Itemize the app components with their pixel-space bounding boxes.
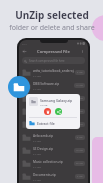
staticText: 18 MB	[76, 149, 83, 152]
staticText: Samsung Galaxy.zip	[33, 95, 64, 99]
staticText: 3 MB	[77, 175, 83, 178]
staticText: Aribcamb.zip	[33, 134, 53, 138]
button[interactable]: More options	[80, 49, 85, 54]
staticText: 2.4 MB	[33, 87, 41, 90]
staticText: Samsung Galaxy.zip	[40, 98, 73, 103]
staticText: 2.4 MB	[33, 100, 41, 103]
button[interactable]: Project files.zip	[22, 105, 85, 118]
staticText: 2.4 MB	[33, 74, 41, 77]
button[interactable]: Music collection.zip	[22, 157, 85, 170]
button[interactable]: Extract file	[29, 120, 77, 126]
staticText: UI Design.zip	[33, 147, 54, 151]
staticText: DBB Software.zip	[33, 82, 60, 86]
staticText: Compressed File	[37, 49, 70, 55]
staticText: 25 MB	[76, 110, 83, 113]
staticText: Music collection.zip	[33, 160, 63, 164]
button[interactable]: Aribcamb.zip	[22, 131, 85, 144]
staticText: 2.4 MB	[33, 152, 41, 155]
staticText: 2.4 MB	[33, 178, 41, 181]
staticText: wdw_tutorialbook_anderoj.zip	[33, 69, 75, 73]
staticText: 6 MB	[77, 136, 83, 139]
staticText: 12 MB	[76, 84, 83, 87]
button[interactable]: Samsung Galaxy.zip	[22, 92, 85, 105]
staticText: Extract file	[37, 121, 55, 126]
staticText: Photo album.zip	[33, 121, 58, 125]
button[interactable]: Extract folder	[8, 76, 30, 98]
button[interactable]: wdw_tutorialbook_anderoj.zip	[22, 66, 85, 79]
button[interactable]: Share	[55, 108, 62, 115]
staticText: 2.4 MB	[33, 165, 41, 168]
staticText: Search compressed file here	[29, 59, 65, 63]
staticText: Project files.zip	[33, 108, 56, 112]
button[interactable]: DBB Software.zip	[22, 79, 85, 92]
staticText: 90 MB	[76, 162, 83, 165]
button[interactable]: Documents.zip	[22, 170, 85, 183]
staticText: 8 MB	[77, 71, 83, 74]
staticText: 10 MB	[76, 97, 83, 100]
staticText: Documents.zip	[33, 173, 56, 177]
button[interactable]: Photo album.zip	[22, 118, 85, 131]
button[interactable]: Search compressed file here	[22, 57, 85, 64]
staticText: folder or delete and share	[9, 23, 95, 33]
staticText: 10 MB	[40, 103, 48, 106]
staticText: 2.4 MB	[33, 139, 41, 142]
staticText: 9:41	[22, 42, 27, 45]
staticText: 40 MB	[76, 123, 83, 126]
button[interactable]: Delete	[44, 108, 51, 115]
button[interactable]: UI Design.zip	[22, 144, 85, 157]
button[interactable]: Back	[22, 49, 27, 54]
staticText: UnZip selected	[15, 8, 89, 22]
